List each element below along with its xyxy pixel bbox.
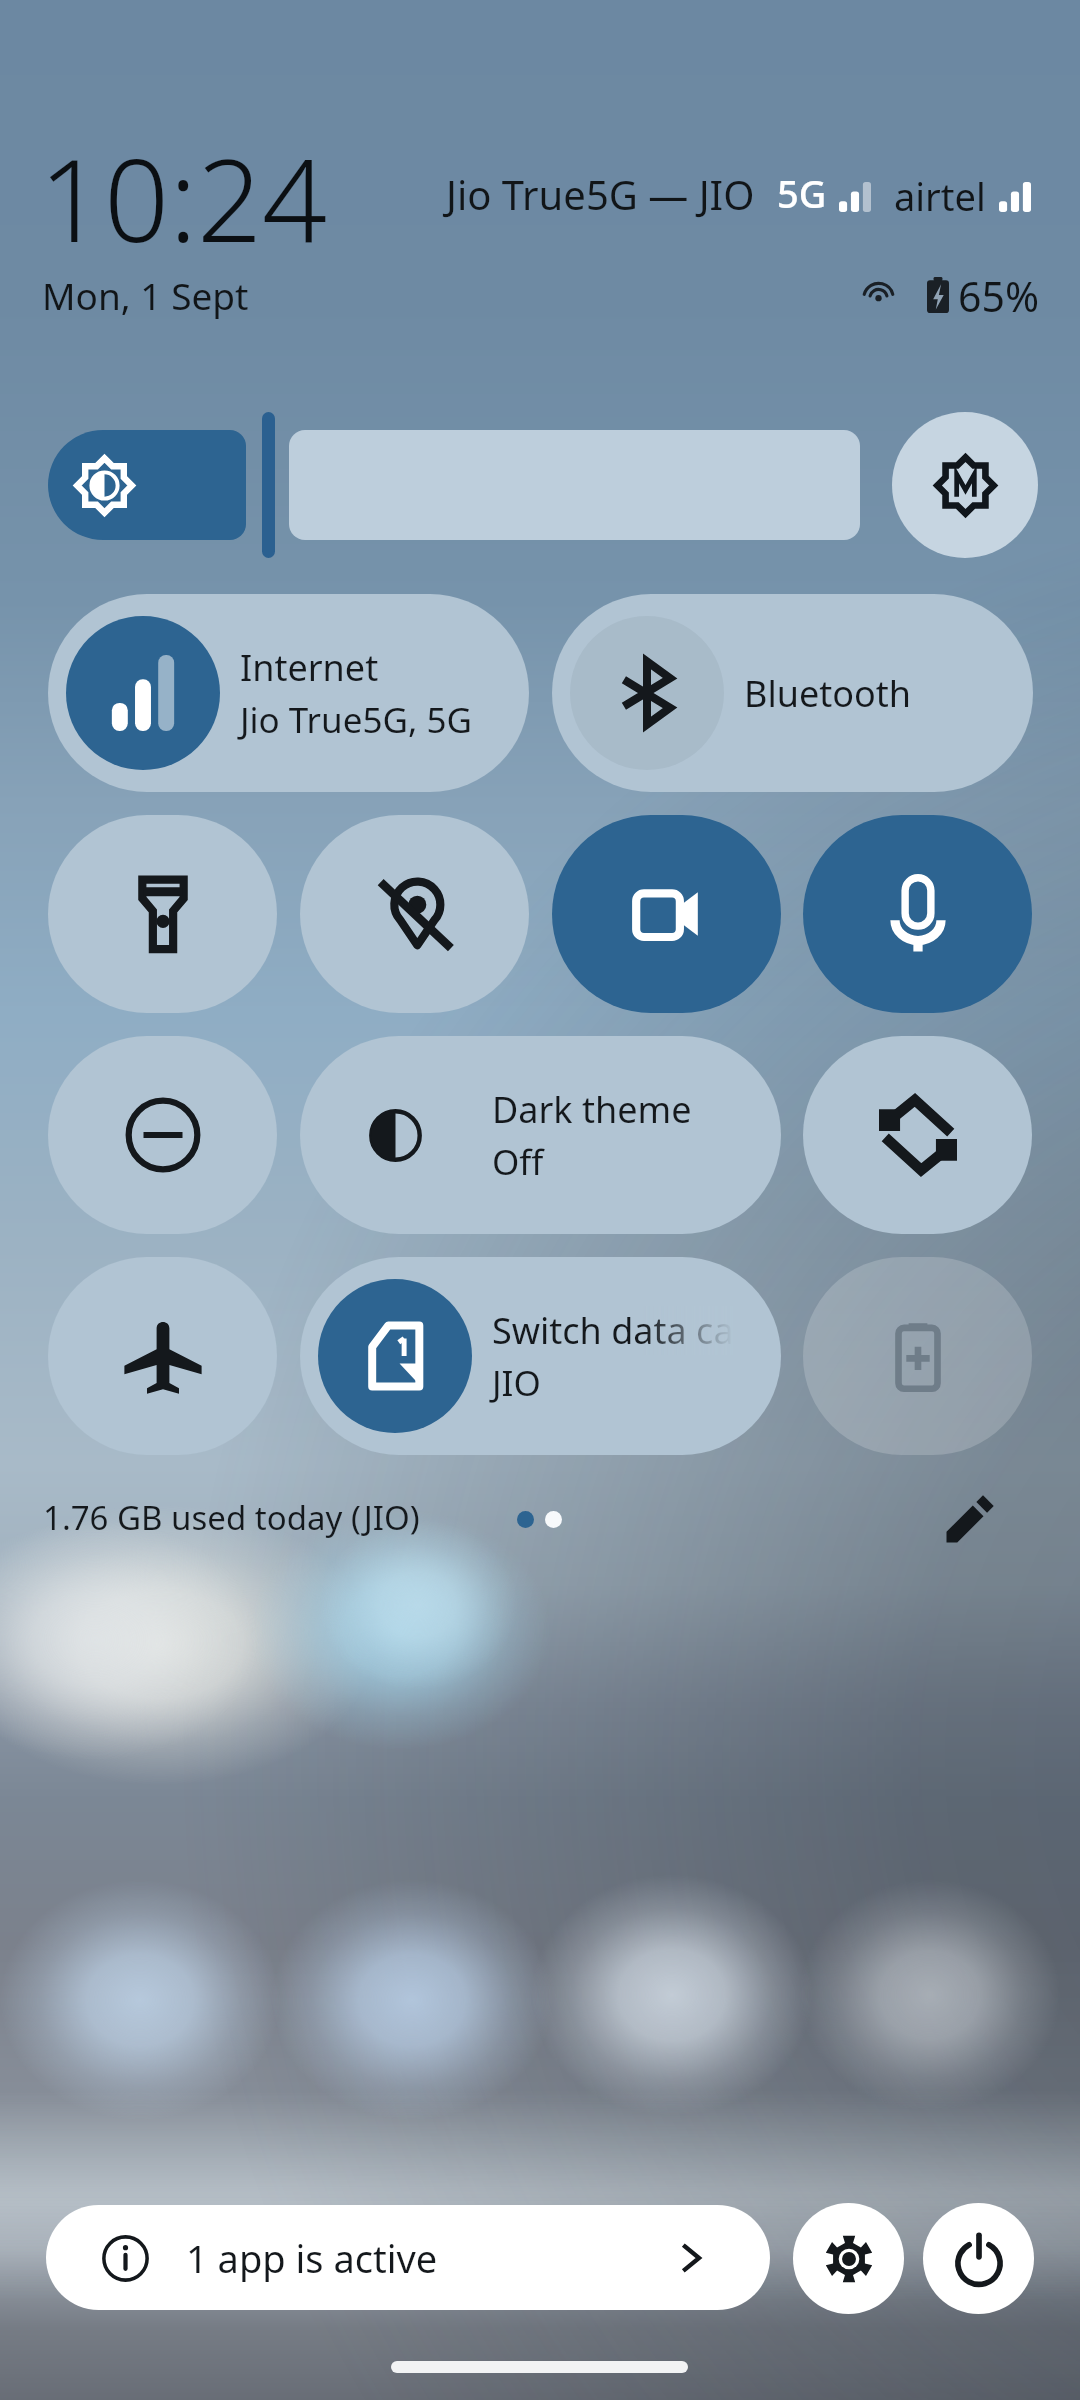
button[interactable]: 1 app is active [46, 2205, 770, 2310]
button[interactable]: Edit tiles [925, 1473, 1015, 1563]
button[interactable]: Airplane mode [48, 1257, 277, 1455]
button[interactable]: Microphone [803, 815, 1032, 1013]
staticText: airtel [894, 170, 986, 222]
button[interactable]: Auto brightness [892, 412, 1038, 558]
button[interactable]: Do not disturb [48, 1036, 277, 1234]
button[interactable]: Dark theme [300, 1036, 781, 1234]
button[interactable]: Location off [300, 815, 529, 1013]
button[interactable]: Battery saver [803, 1257, 1032, 1455]
button[interactable]: Brightness track [289, 430, 860, 540]
button[interactable]: Switch data ca [300, 1257, 781, 1455]
staticText: Switch data ca [492, 1306, 734, 1355]
staticText: Jio True5G, 5G [240, 696, 472, 744]
staticText: 1.76 GB used today (JIO) [43, 1495, 420, 1540]
button[interactable]: Brightness [48, 430, 246, 540]
staticText: Dark theme [492, 1085, 692, 1134]
staticText: 1 app is active [186, 2232, 438, 2284]
button[interactable]: Auto rotate [803, 1036, 1032, 1234]
staticText: JIO [492, 1359, 541, 1407]
button[interactable]: Settings [793, 2203, 904, 2314]
button[interactable]: Flashlight [48, 815, 277, 1013]
staticText: Mon, 1 Sept [42, 270, 249, 320]
staticText: 5G [777, 167, 827, 219]
button[interactable]: Bluetooth [552, 594, 1033, 792]
staticText: Internet [240, 643, 379, 692]
staticText: Bluetooth [744, 669, 912, 718]
button[interactable]: Power [923, 2203, 1034, 2314]
button[interactable]: Internet [48, 594, 529, 792]
staticText: Jio True5G — JIO [446, 167, 755, 221]
button[interactable]: Screen record [552, 815, 781, 1013]
staticText: 10:24 [39, 120, 328, 275]
staticText: Off [492, 1138, 544, 1186]
staticText: 65% [958, 268, 1039, 324]
